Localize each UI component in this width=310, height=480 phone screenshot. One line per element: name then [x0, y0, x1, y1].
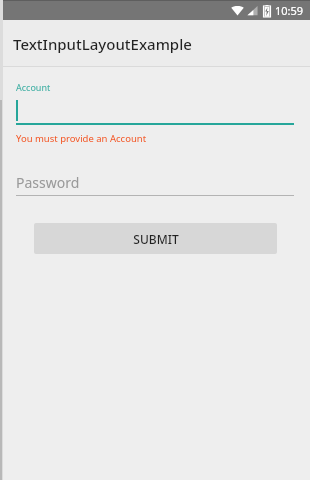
button[interactable]: SUBMIT: [34, 223, 277, 254]
other: Wi-Fi signal: [231, 5, 244, 16]
staticText: 10:59: [275, 3, 304, 18]
staticText: Password: [16, 173, 80, 192]
button[interactable]: [0, 100, 310, 123]
other: Battery charging: [263, 5, 271, 17]
staticText: Account: [16, 81, 51, 93]
staticText: You must provide an Account: [16, 132, 147, 145]
staticText: SUBMIT: [133, 231, 179, 247]
button[interactable]: Password: [0, 169, 310, 195]
staticText: TextInputLayoutExample: [13, 34, 192, 54]
other: Cellular signal: [247, 5, 258, 16]
